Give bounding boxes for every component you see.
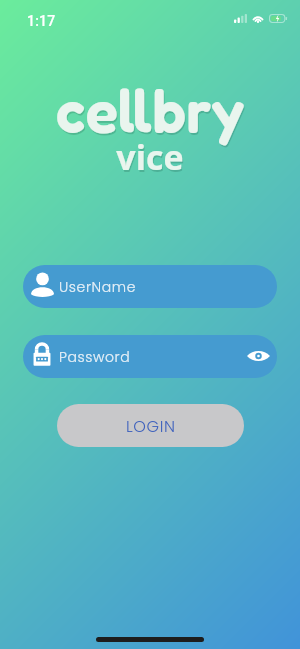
staticText: UserName — [59, 277, 137, 297]
button[interactable]: Password — [23, 335, 277, 378]
button[interactable]: UserName — [23, 265, 277, 308]
staticText: 1:17 — [27, 13, 56, 29]
staticText: cellbry — [55, 74, 245, 147]
button[interactable]: Show password — [241, 340, 275, 374]
staticText: Password — [59, 347, 131, 367]
staticText: cellbry — [56, 76, 246, 149]
staticText: LOGIN — [126, 415, 176, 437]
button[interactable]: LOGIN — [57, 404, 244, 447]
staticText: vice — [117, 136, 185, 182]
staticText: vice — [116, 134, 184, 180]
